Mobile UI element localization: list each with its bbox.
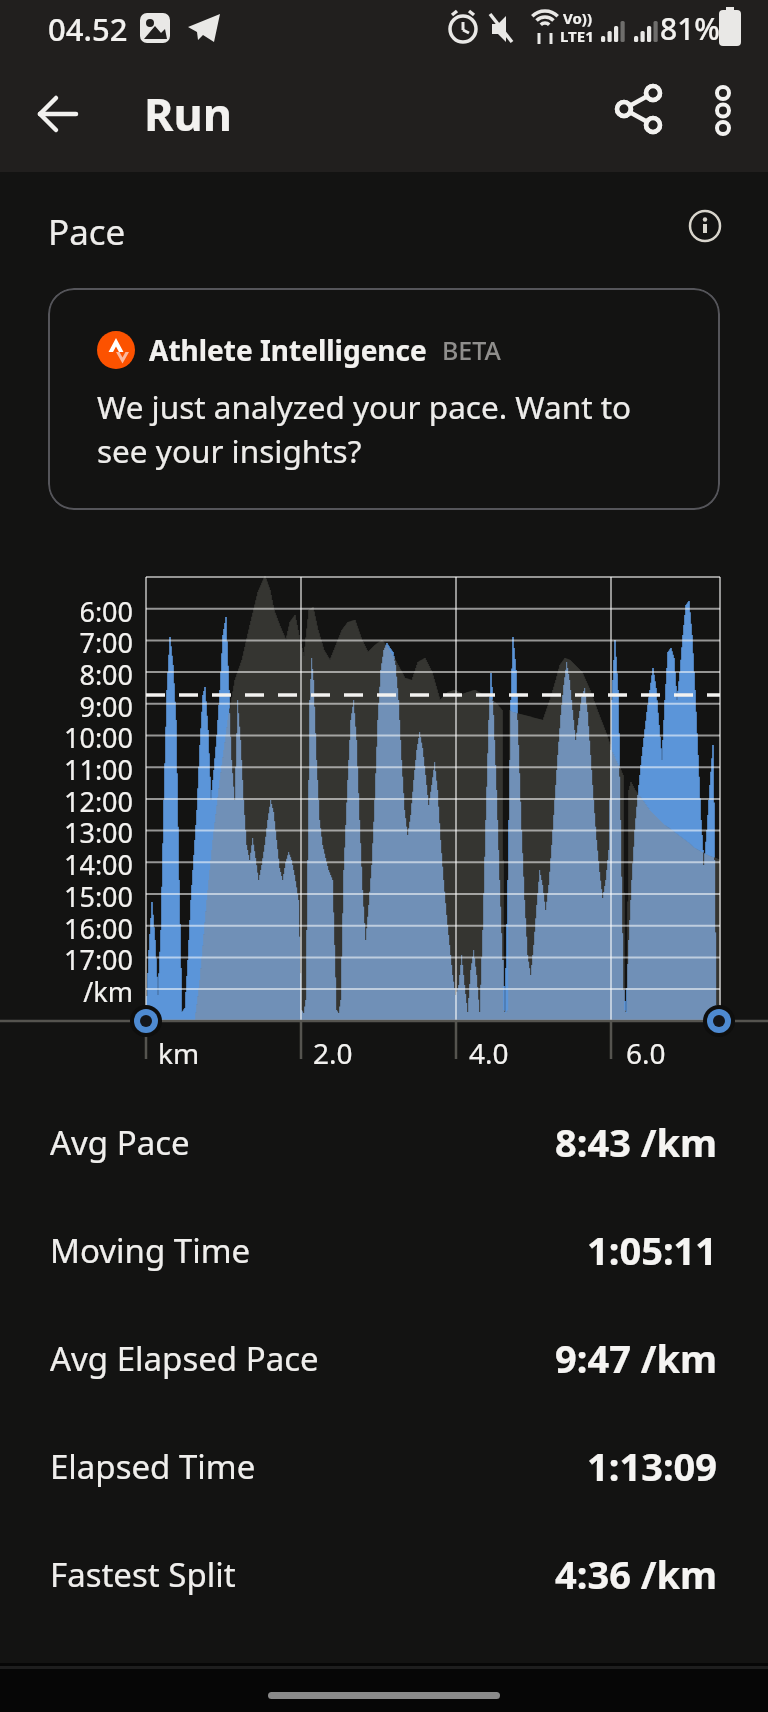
button[interactable]: Avg Elapsed Pace (50, 1304, 718, 1412)
staticText: 10:00 (63, 719, 133, 756)
staticText: Elapsed Time (50, 1444, 256, 1489)
staticText: 4.0 (469, 1034, 509, 1072)
staticText: 17:00 (63, 941, 133, 978)
button[interactable]: Athlete Intelligence (48, 288, 720, 510)
staticText: LTE1 (560, 26, 594, 46)
staticText: Fastest Split (50, 1552, 236, 1597)
staticText: 11:00 (63, 751, 133, 788)
staticText: Vo)) (563, 8, 592, 28)
staticText: 81% (660, 8, 720, 49)
staticText: 12:00 (63, 783, 133, 820)
staticText: 1:13:09 (587, 1440, 718, 1492)
button[interactable]: Fastest Split (50, 1520, 718, 1628)
button[interactable]: Elapsed Time (50, 1412, 718, 1520)
staticText: 04.52 (48, 8, 128, 50)
staticText: 9:00 (79, 688, 133, 725)
staticText: 8:00 (79, 656, 133, 693)
staticText: 15:00 (63, 878, 133, 915)
staticText: BETA (442, 333, 501, 367)
staticText: Pace (48, 208, 126, 256)
staticText: Avg Pace (50, 1120, 190, 1165)
staticText: Moving Time (50, 1228, 251, 1273)
staticText: Avg Elapsed Pace (50, 1336, 319, 1381)
staticText: 16:00 (63, 910, 133, 947)
button[interactable]: Avg Pace (50, 1088, 718, 1196)
staticText: 7:00 (79, 624, 133, 661)
button[interactable] (610, 80, 668, 138)
staticText: 2.0 (313, 1034, 353, 1072)
staticText: 13:00 (63, 814, 133, 851)
button[interactable] (697, 80, 749, 156)
staticText: km (158, 1034, 200, 1072)
staticText: 8:43 /km (555, 1116, 718, 1168)
staticText: We just analyzed your pace. Want to see … (97, 385, 632, 472)
staticText: 4:36 /km (555, 1548, 718, 1600)
staticText: Run (144, 83, 233, 144)
staticText: 6.0 (626, 1034, 666, 1072)
staticText: 14:00 (63, 846, 133, 883)
staticText: 6:00 (79, 593, 133, 630)
button[interactable] (28, 84, 88, 144)
staticText: 9:47 /km (555, 1332, 718, 1384)
button[interactable] (675, 196, 735, 256)
staticText: Athlete Intelligence (149, 331, 427, 369)
staticText: 1:05:11 (587, 1224, 718, 1276)
staticText: /km (83, 973, 133, 1010)
button[interactable]: Moving Time (50, 1196, 718, 1304)
